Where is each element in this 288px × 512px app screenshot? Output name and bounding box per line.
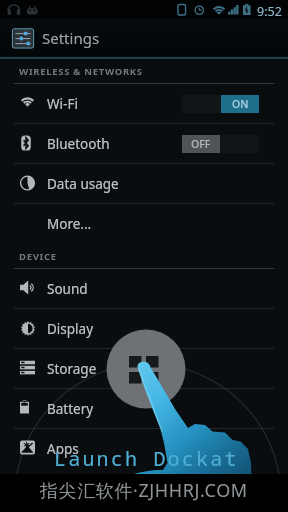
button[interactable]: More...: [0, 204, 288, 243]
staticText: Wi-Fi: [47, 95, 78, 113]
button[interactable]: Battery: [0, 389, 288, 428]
staticText: Launch Dockat: [54, 445, 239, 472]
staticText: Battery: [47, 400, 94, 418]
staticText: ON: [232, 97, 249, 111]
staticText: Data usage: [47, 175, 119, 193]
staticText: 指尖汇软件·ZJHHRJ.COM: [40, 478, 248, 503]
button[interactable]: Data usage: [0, 164, 288, 203]
staticText: DEVICE: [19, 250, 57, 263]
button[interactable]: ON: [182, 95, 259, 113]
staticText: WIRELESS & NETWORKS: [19, 65, 143, 78]
staticText: Sound: [47, 280, 88, 298]
staticText: 9:52: [257, 3, 282, 20]
button[interactable]: Wi-Fi: [0, 84, 288, 123]
staticText: Settings: [42, 28, 100, 48]
button[interactable]: Settings: [0, 19, 288, 57]
staticText: OFF: [191, 137, 211, 151]
staticText: More...: [47, 215, 92, 233]
staticText: Storage: [47, 360, 97, 378]
button[interactable]: Display: [0, 309, 288, 348]
staticText: Display: [47, 320, 94, 338]
button[interactable]: OFF: [182, 135, 259, 153]
button[interactable]: Bluetooth: [0, 124, 288, 163]
staticText: Apps: [47, 440, 79, 458]
button[interactable]: Storage: [0, 349, 288, 388]
button[interactable]: Apps: [0, 429, 288, 468]
staticText: Bluetooth: [47, 135, 110, 153]
button[interactable]: Sound: [0, 269, 288, 308]
